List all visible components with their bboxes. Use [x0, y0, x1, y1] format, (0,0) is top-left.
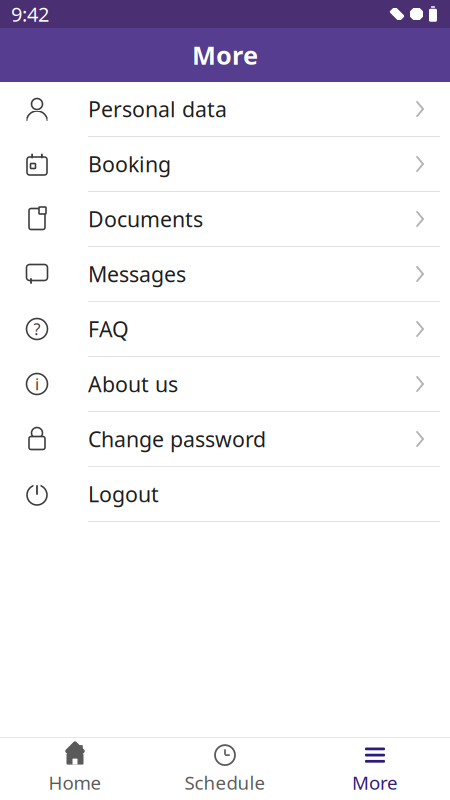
staticText: Logout — [88, 480, 159, 508]
staticText: About us — [88, 370, 178, 398]
button[interactable]: Booking — [0, 137, 450, 192]
staticText: FAQ — [88, 315, 129, 343]
button[interactable]: i — [0, 357, 450, 412]
staticText: ? — [33, 318, 40, 340]
staticText: 9:42 — [11, 1, 49, 27]
staticText: More — [352, 770, 398, 795]
staticText: Messages — [88, 260, 186, 288]
staticText: Documents — [88, 205, 203, 233]
button[interactable]: Messages — [0, 247, 450, 302]
staticText: More — [192, 38, 258, 72]
staticText: Home — [48, 770, 101, 795]
staticText: Change password — [88, 425, 266, 453]
staticText: Booking — [88, 150, 171, 178]
button[interactable]: Personal data — [0, 82, 450, 137]
staticText: i — [35, 373, 39, 395]
button[interactable]: ? — [0, 302, 450, 357]
button[interactable]: Schedule — [150, 735, 300, 800]
button[interactable]: Logout — [0, 467, 450, 522]
button[interactable]: Home — [0, 735, 150, 800]
button[interactable]: Change password — [0, 412, 450, 467]
staticText: Personal data — [88, 95, 227, 123]
staticText: Schedule — [184, 770, 265, 795]
button[interactable]: More — [300, 735, 450, 800]
button[interactable]: Documents — [0, 192, 450, 247]
